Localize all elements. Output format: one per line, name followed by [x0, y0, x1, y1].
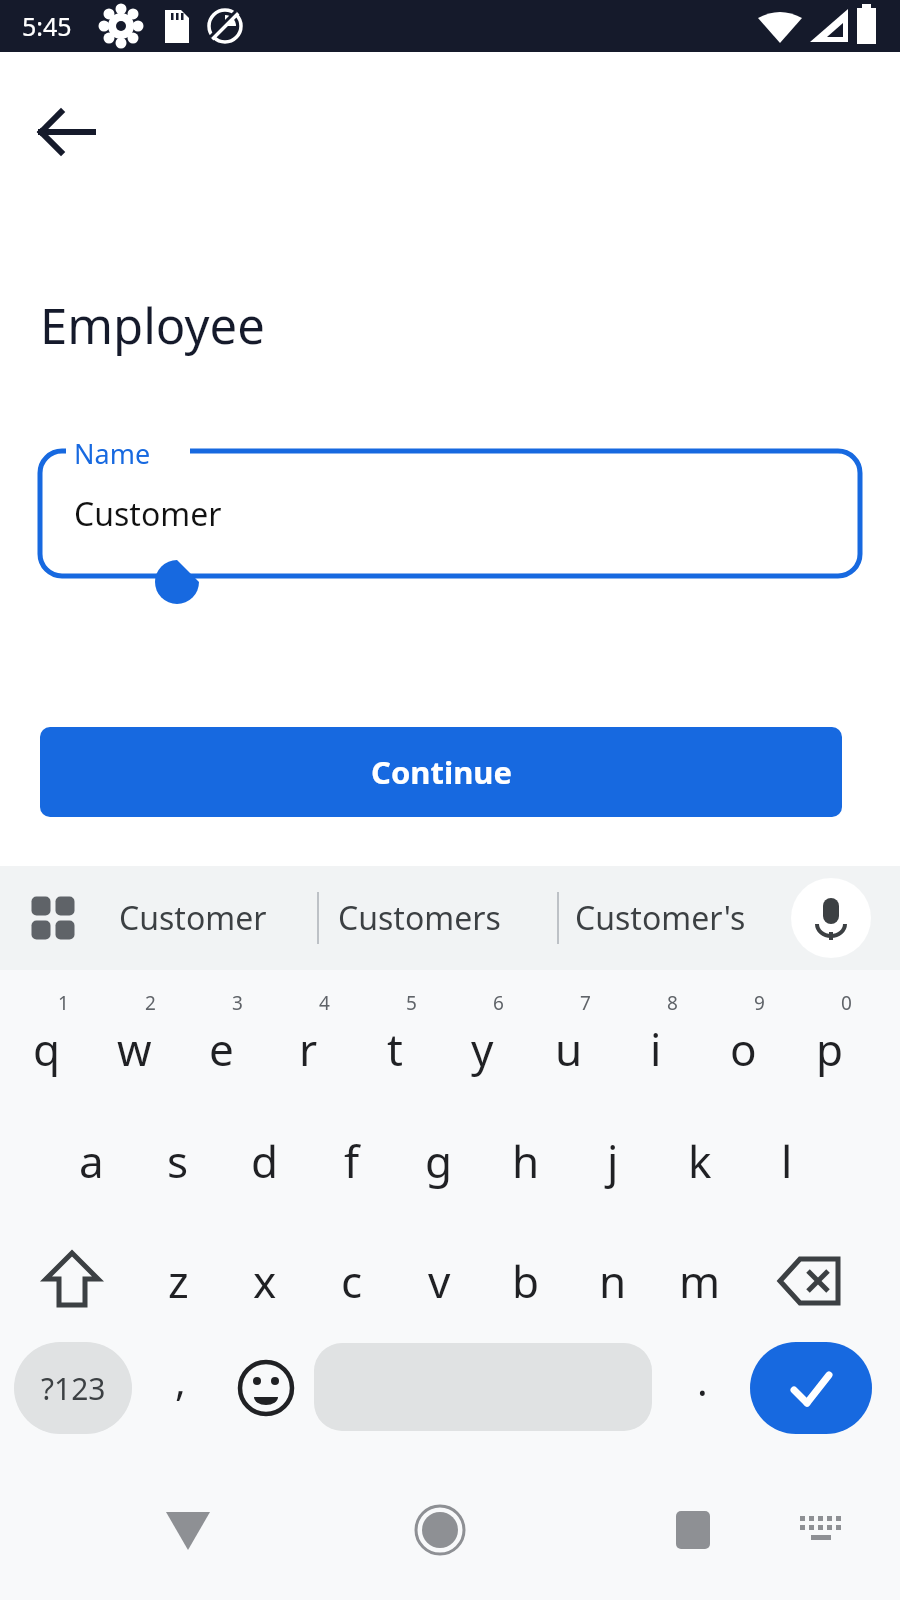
button[interactable]: Done: [750, 1342, 872, 1434]
staticText: f: [344, 1131, 360, 1191]
staticText: j: [607, 1131, 619, 1191]
staticText: Continue: [371, 751, 512, 793]
button[interactable]: 6: [439, 982, 525, 1100]
staticText: q: [33, 1019, 61, 1079]
button[interactable]: Home: [400, 1460, 480, 1600]
button[interactable]: 5: [352, 982, 438, 1100]
staticText: ,: [175, 1353, 186, 1407]
button[interactable]: Voice input: [791, 878, 871, 958]
staticText: 9: [754, 990, 765, 1016]
button[interactable]: 4: [265, 982, 351, 1100]
button[interactable]: g: [396, 1102, 482, 1220]
button[interactable]: Toolbar: [22, 866, 84, 970]
button[interactable]: v: [396, 1222, 482, 1340]
staticText: n: [599, 1251, 627, 1311]
staticText: u: [555, 1019, 583, 1079]
button[interactable]: s: [135, 1102, 221, 1220]
button[interactable]: 0: [787, 982, 873, 1100]
staticText: e: [209, 1019, 234, 1079]
button[interactable]: Customer's: [575, 866, 746, 970]
staticText: r: [299, 1019, 318, 1079]
button[interactable]: Name: [0, 440, 900, 600]
button[interactable]: b: [483, 1222, 569, 1340]
staticText: 8: [667, 990, 678, 1016]
button[interactable]: 1: [4, 982, 90, 1100]
staticText: Customer's: [575, 896, 746, 940]
button[interactable]: l: [744, 1102, 830, 1220]
button[interactable]: ?123: [14, 1342, 132, 1434]
staticText: z: [168, 1251, 189, 1311]
staticText: ?123: [41, 1368, 106, 1409]
staticText: 5:45: [22, 9, 72, 43]
button[interactable]: ,: [140, 1342, 220, 1434]
staticText: v: [428, 1251, 451, 1311]
staticText: Customers: [338, 896, 501, 940]
button[interactable]: n: [570, 1222, 656, 1340]
button[interactable]: d: [222, 1102, 308, 1220]
staticText: d: [251, 1131, 279, 1191]
staticText: p: [816, 1019, 844, 1079]
staticText: .: [697, 1353, 708, 1407]
staticText: 1: [58, 990, 69, 1016]
staticText: y: [471, 1019, 494, 1079]
button[interactable]: Backspace: [760, 1222, 860, 1340]
staticText: 0: [841, 990, 852, 1016]
staticText: w: [117, 1019, 152, 1079]
button[interactable]: Continue: [40, 727, 842, 817]
button[interactable]: 7: [526, 982, 612, 1100]
button[interactable]: .: [662, 1342, 742, 1434]
staticText: g: [425, 1131, 453, 1191]
button[interactable]: 8: [613, 982, 699, 1100]
staticText: o: [730, 1019, 757, 1079]
staticText: a: [79, 1131, 104, 1191]
button[interactable]: h: [483, 1102, 569, 1220]
button[interactable]: Recents: [653, 1460, 733, 1600]
button[interactable]: 3: [178, 982, 264, 1100]
button[interactable]: Emoji: [226, 1342, 306, 1434]
button[interactable]: f: [309, 1102, 395, 1220]
staticText: x: [253, 1251, 277, 1311]
button[interactable]: j: [570, 1102, 656, 1220]
staticText: Customer: [119, 896, 267, 940]
button[interactable]: x: [222, 1222, 308, 1340]
button[interactable]: Switch keyboard: [780, 1460, 860, 1600]
button[interactable]: k: [657, 1102, 743, 1220]
staticText: h: [512, 1131, 540, 1191]
staticText: i: [650, 1019, 662, 1079]
button[interactable]: Customer: [119, 866, 267, 970]
staticText: 3: [232, 990, 243, 1016]
staticText: 2: [145, 990, 156, 1016]
staticText: s: [167, 1131, 189, 1191]
button[interactable]: m: [657, 1222, 743, 1340]
staticText: m: [679, 1251, 721, 1311]
button[interactable]: 9: [700, 982, 786, 1100]
staticText: b: [512, 1251, 540, 1311]
button[interactable]: Customers: [338, 866, 501, 970]
staticText: 4: [319, 990, 330, 1016]
staticText: 7: [580, 990, 591, 1016]
button[interactable]: Shift: [26, 1222, 118, 1340]
staticText: 6: [493, 990, 504, 1016]
staticText: Customer: [74, 492, 222, 536]
button[interactable]: c: [309, 1222, 395, 1340]
staticText: c: [341, 1251, 363, 1311]
staticText: k: [688, 1131, 712, 1191]
staticText: t: [387, 1019, 403, 1079]
button[interactable]: Space: [314, 1343, 652, 1431]
staticText: l: [781, 1131, 793, 1191]
button[interactable]: z: [135, 1222, 221, 1340]
button[interactable]: a: [48, 1102, 134, 1220]
button[interactable]: Back: [27, 92, 107, 172]
staticText: Employee: [40, 292, 265, 359]
button[interactable]: Hide keyboard: [148, 1460, 228, 1600]
button[interactable]: 2: [91, 982, 177, 1100]
staticText: 5: [406, 990, 417, 1016]
staticText: Name: [74, 435, 151, 472]
